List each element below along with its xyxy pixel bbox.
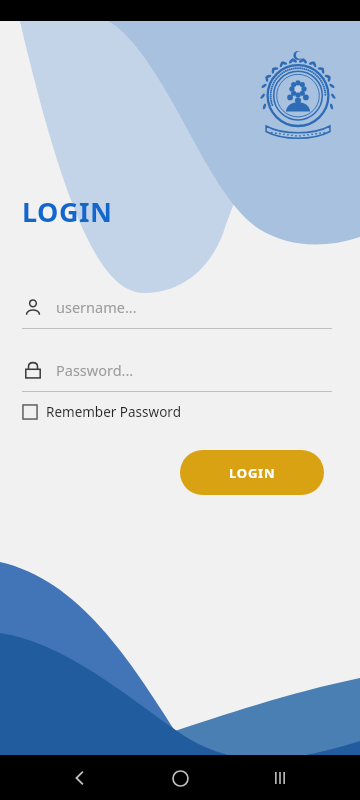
staticText: LOGIN	[229, 464, 276, 482]
staticText: Password...	[56, 360, 134, 380]
button[interactable]: Home	[162, 760, 198, 796]
button[interactable]: LOGIN	[180, 450, 324, 495]
button[interactable]: Password...	[0, 355, 360, 392]
button[interactable]: Recent apps	[262, 760, 298, 796]
button[interactable]: Remember Password	[22, 400, 189, 424]
staticText: username...	[56, 297, 137, 317]
staticText: Remember Password	[46, 403, 181, 421]
button[interactable]: Back	[62, 760, 98, 796]
staticText: LOGIN	[22, 193, 113, 230]
button[interactable]: username...	[0, 292, 360, 329]
